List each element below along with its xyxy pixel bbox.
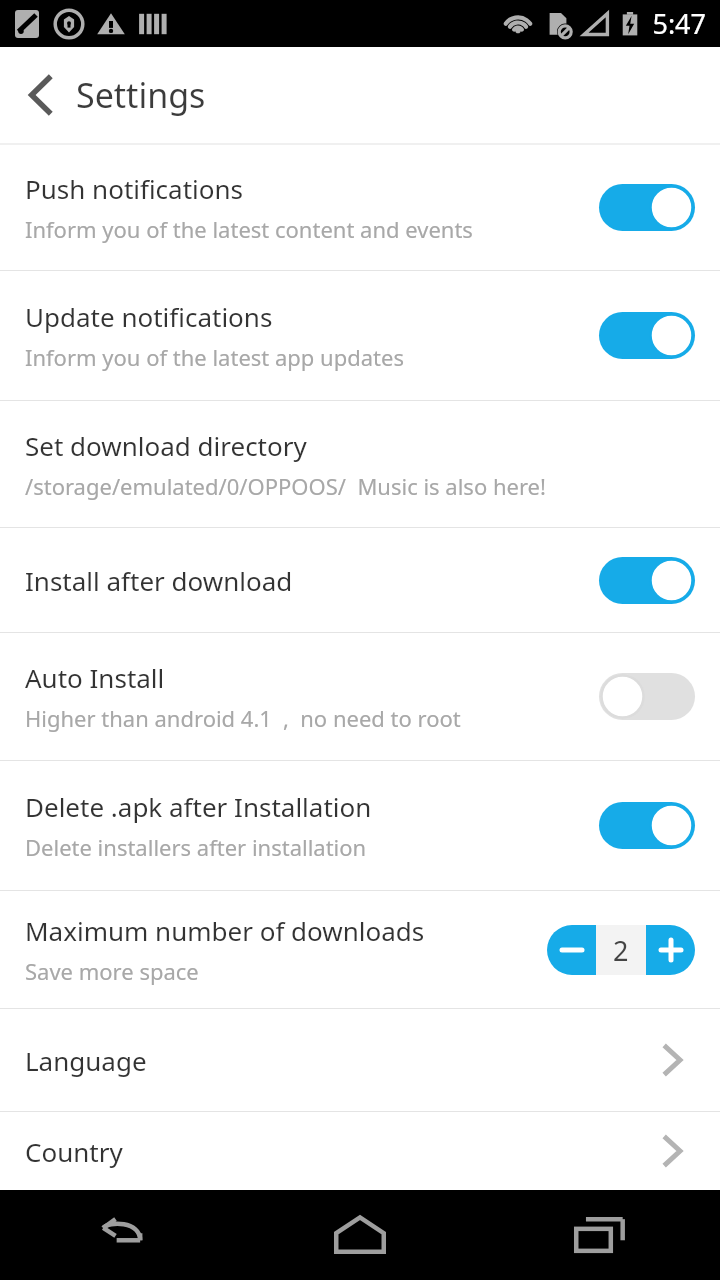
staticText: 5:47	[652, 5, 706, 42]
staticText: /storage/emulated/0/OPPOOS/ Music is als…	[25, 471, 546, 501]
button[interactable]: Language	[0, 1009, 720, 1111]
staticText: Auto Install	[25, 660, 165, 695]
button[interactable]: Increase	[646, 925, 695, 975]
button[interactable]: Country	[0, 1112, 720, 1190]
staticText: Settings	[76, 72, 206, 118]
staticText: Set download directory	[25, 428, 307, 463]
button[interactable]: Install after download	[0, 528, 720, 632]
button[interactable]: Push notifications	[0, 145, 720, 270]
button[interactable]: Delete .apk after Installation	[0, 761, 720, 890]
staticText: Delete .apk after Installation	[25, 789, 372, 824]
button[interactable]: Open	[651, 1038, 695, 1082]
button[interactable]: Toggle on	[599, 802, 695, 849]
staticText: Country	[25, 1134, 123, 1169]
staticText: 2	[613, 932, 629, 969]
button[interactable]: Toggle on	[599, 184, 695, 231]
button[interactable]: Back	[12, 67, 68, 123]
button[interactable]: Toggle on	[599, 312, 695, 359]
staticText: Update notifications	[25, 299, 273, 334]
staticText: Install after download	[25, 563, 293, 598]
button[interactable]: Open	[651, 1129, 695, 1173]
staticText: Push notifications	[25, 171, 244, 206]
staticText: Higher than android 4.1 , no need to roo…	[25, 703, 461, 733]
button[interactable]: Toggle on	[599, 557, 695, 604]
button[interactable]: Recent apps	[480, 1190, 720, 1280]
button[interactable]: Maximum number of downloads	[0, 891, 720, 1008]
button[interactable]: Back	[0, 1190, 240, 1280]
staticText: Maximum number of downloads	[25, 913, 425, 948]
button[interactable]: Auto Install	[0, 633, 720, 760]
staticText: Delete installers after installation	[25, 832, 367, 862]
button[interactable]: Set download directory	[0, 401, 720, 527]
staticText: Save more space	[25, 956, 199, 986]
button[interactable]: Toggle off	[599, 673, 695, 720]
button[interactable]: Home	[240, 1190, 480, 1280]
staticText: Inform you of the latest content and eve…	[25, 214, 473, 244]
staticText: Inform you of the latest app updates	[25, 342, 404, 372]
staticText: Language	[25, 1043, 147, 1078]
button[interactable]: Update notifications	[0, 271, 720, 400]
button[interactable]: Decrease	[547, 925, 596, 975]
